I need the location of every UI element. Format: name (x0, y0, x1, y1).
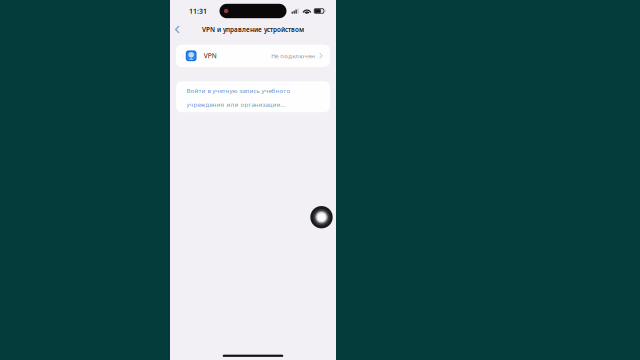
staticText: 11:31 (189, 6, 207, 16)
staticText: VPN (204, 51, 217, 60)
button[interactable]: Back (172, 22, 183, 37)
staticText: учреждения или организации… (186, 100, 285, 109)
button[interactable]: VPN (176, 45, 330, 67)
button[interactable]: Войти в учетную запись учебного (176, 81, 330, 112)
staticText: Войти в учетную запись учебного (186, 86, 290, 95)
staticText: VPN и управление устройством (202, 25, 304, 34)
staticText: Не подключен (271, 52, 315, 60)
